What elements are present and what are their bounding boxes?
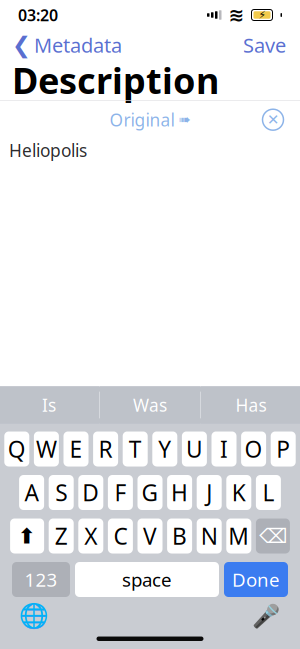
button[interactable]: Original [101,102,198,137]
staticText: ⌫ [259,525,287,547]
button[interactable]: M [226,518,251,553]
button[interactable]: I [211,431,236,466]
staticText: Has [235,393,266,416]
button[interactable]: X [78,518,103,553]
staticText: F [114,477,126,507]
staticText: E [69,434,82,464]
staticText: 123 [24,567,57,592]
button[interactable]: T [123,431,148,466]
staticText: W [36,434,57,464]
staticText: G [141,477,158,507]
button[interactable]: D [78,475,103,510]
staticText: J [206,477,212,507]
staticText: H [171,477,188,507]
button[interactable]: U [182,431,207,466]
staticText: Save [243,32,286,58]
staticText: D [82,477,99,507]
staticText: 🌐 [19,602,49,630]
button[interactable]: Q [4,431,29,466]
button[interactable]: C [108,518,133,553]
staticText: 03:20 [18,4,58,26]
button[interactable]: N [197,518,222,553]
button[interactable]: A [19,475,44,510]
button[interactable]: H [167,475,192,510]
button[interactable]: K [226,475,251,510]
staticText: ❮ [12,32,31,58]
button[interactable]: F [108,475,133,510]
button[interactable]: Has [201,386,300,423]
button[interactable]: 123 [12,562,70,597]
button[interactable]: E [63,431,88,466]
staticText: P [276,434,290,464]
button[interactable]: Next keyboard [17,599,51,633]
button[interactable]: Z [49,518,74,553]
button[interactable]: P [271,431,296,466]
button[interactable]: Dictation [249,599,283,633]
staticText: C [113,521,127,551]
staticText: Metadata [34,32,122,58]
staticText: O [245,434,263,464]
button[interactable]: B [167,518,192,553]
staticText: Is [42,393,56,416]
staticText: K [232,477,246,507]
staticText: ≋ [228,4,244,26]
button[interactable]: R [93,431,118,466]
staticText: Original [109,108,174,131]
staticText: ➠ [178,111,190,128]
button[interactable]: Save [231,26,298,64]
staticText: space [122,567,172,592]
button[interactable]: G [137,475,162,510]
button[interactable]: S [49,475,74,510]
staticText: A [25,477,39,507]
staticText: R [99,434,113,464]
staticText: N [201,521,218,551]
staticText: T [129,434,142,464]
staticText: Q [8,434,26,464]
staticText: L [262,477,274,507]
button[interactable]: space [75,562,219,597]
staticText: ⬆ [18,524,36,548]
staticText: Description [12,56,219,104]
button[interactable]: L [256,475,281,510]
staticText: X [84,521,97,551]
button[interactable]: Was [100,386,200,423]
staticText: Heliopolis [9,139,87,162]
button[interactable]: Y [152,431,177,466]
staticText: V [143,521,157,551]
button[interactable]: Is [0,386,99,423]
staticText: Y [158,434,171,464]
staticText: ⚡︎ [258,9,265,21]
staticText: Was [133,393,167,416]
button[interactable]: Delete [256,518,290,553]
staticText: I [220,434,228,464]
staticText: M [228,521,249,551]
staticText: U [186,434,203,464]
staticText: 🎤 [252,603,280,629]
staticText: Done [232,567,280,592]
button[interactable]: Done [224,562,288,597]
staticText: B [172,521,187,551]
staticText: S [55,477,67,507]
button[interactable]: W [34,431,59,466]
button[interactable]: V [137,518,162,553]
button[interactable]: Shift [10,518,44,553]
button[interactable]: ❮ [2,26,132,64]
staticText: Z [55,521,68,551]
button[interactable]: O [241,431,266,466]
button[interactable]: J [197,475,222,510]
staticText: ✕ [267,111,279,128]
button[interactable]: Clear description [256,103,290,137]
